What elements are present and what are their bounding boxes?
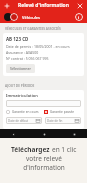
staticText: Immatriculation <box>6 93 38 98</box>
staticText: AB 123 CD <box>6 36 29 42</box>
staticText: N° contrat : 5 056 067 995 <box>6 56 49 61</box>
button[interactable]: Garantie en cours <box>6 110 39 114</box>
button[interactable] <box>6 100 81 107</box>
button[interactable]: Recents <box>71 131 77 137</box>
staticText: Véhicules <box>22 15 41 20</box>
staticText: Date de début <box>8 119 36 123</box>
staticText: Date de permis : 18/05/2001 - en cours <box>6 44 70 49</box>
other: Pick date <box>36 119 40 123</box>
button[interactable]: Information <box>75 13 83 21</box>
button[interactable]: Véhicules <box>4 13 41 21</box>
button[interactable]: Menu <box>3 2 11 10</box>
button[interactable]: Date de début <box>6 117 42 124</box>
staticText: Date de fin <box>47 119 75 123</box>
staticText: votre relevé <box>26 154 62 163</box>
other: Pick date <box>75 119 79 123</box>
staticText: VÉHICULES ET GARANTIES ASSOCIÉS <box>5 27 61 31</box>
button[interactable]: Home <box>41 131 47 137</box>
button[interactable]: Garantie passée <box>44 110 75 114</box>
staticText: Sélectionner <box>10 66 31 71</box>
staticText: en 1 clic <box>52 145 77 154</box>
staticText: AJOUT DE PÉRIODE <box>5 84 35 88</box>
button[interactable]: Back <box>10 131 16 137</box>
staticText: Garantie en cours <box>12 110 39 114</box>
staticText: Relevé d'information <box>18 2 69 9</box>
button[interactable]: Close <box>76 2 84 10</box>
button[interactable]: AB 123 CD <box>3 33 84 76</box>
button[interactable]: Immatriculation <box>3 90 84 129</box>
staticText: Téléchargez <box>11 145 52 154</box>
staticText: Garantie passée <box>50 110 75 114</box>
button[interactable]: Date de fin <box>45 117 81 124</box>
staticText: Assurance : AXA500 <box>6 50 39 55</box>
staticText: i <box>78 15 80 20</box>
staticText: d'information <box>23 163 65 172</box>
button[interactable]: Sélectionner <box>6 64 35 73</box>
